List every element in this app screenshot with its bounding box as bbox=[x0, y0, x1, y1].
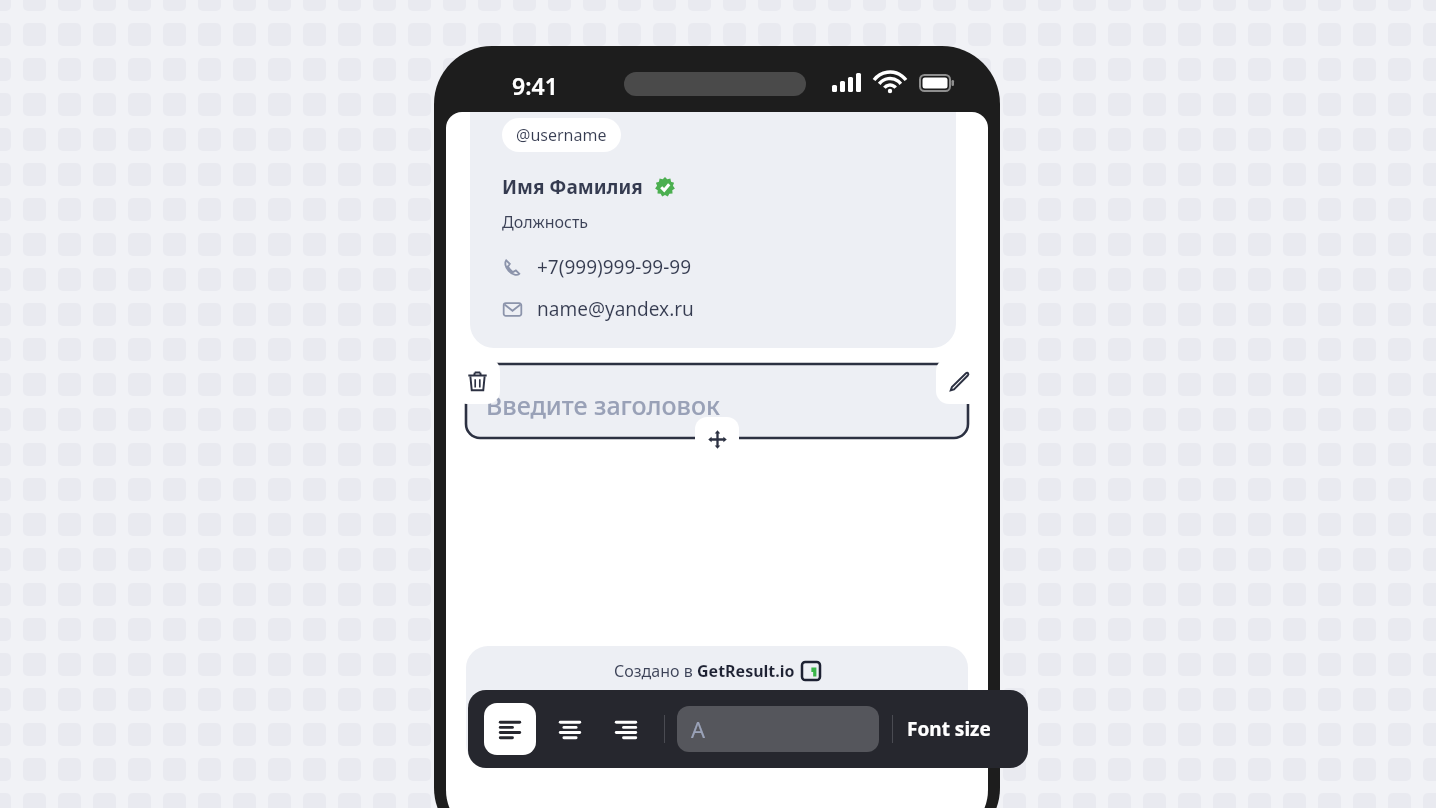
button[interactable]: Edit bbox=[936, 358, 982, 404]
button[interactable]: Move bbox=[695, 417, 739, 461]
button[interactable]: Align center bbox=[544, 703, 596, 755]
button[interactable] bbox=[466, 364, 968, 438]
staticText: Font size bbox=[907, 716, 991, 742]
button[interactable]: @username bbox=[502, 118, 621, 152]
button[interactable]: name@yandex.ru bbox=[502, 296, 694, 322]
staticText: Создано в bbox=[614, 660, 697, 682]
staticText: name@yandex.ru bbox=[537, 296, 694, 322]
button[interactable] bbox=[470, 112, 956, 348]
button[interactable]: Align left bbox=[484, 703, 536, 755]
staticText: Должность bbox=[502, 211, 589, 233]
button[interactable]: Align right bbox=[600, 703, 652, 755]
staticText: GetResult.io bbox=[697, 660, 795, 682]
button[interactable]: Delete bbox=[454, 358, 500, 404]
staticText: @username bbox=[516, 124, 607, 146]
staticText: 9:41 bbox=[512, 70, 558, 101]
button[interactable]: +7(999)999-99-99 bbox=[502, 254, 692, 280]
staticText: A bbox=[691, 714, 706, 744]
staticText: Введите заголовок bbox=[486, 388, 720, 422]
staticText: Имя Фамилия bbox=[502, 174, 643, 200]
button[interactable]: A bbox=[677, 706, 879, 752]
button[interactable]: Font size bbox=[907, 716, 991, 742]
staticText: +7(999)999-99-99 bbox=[537, 254, 692, 280]
